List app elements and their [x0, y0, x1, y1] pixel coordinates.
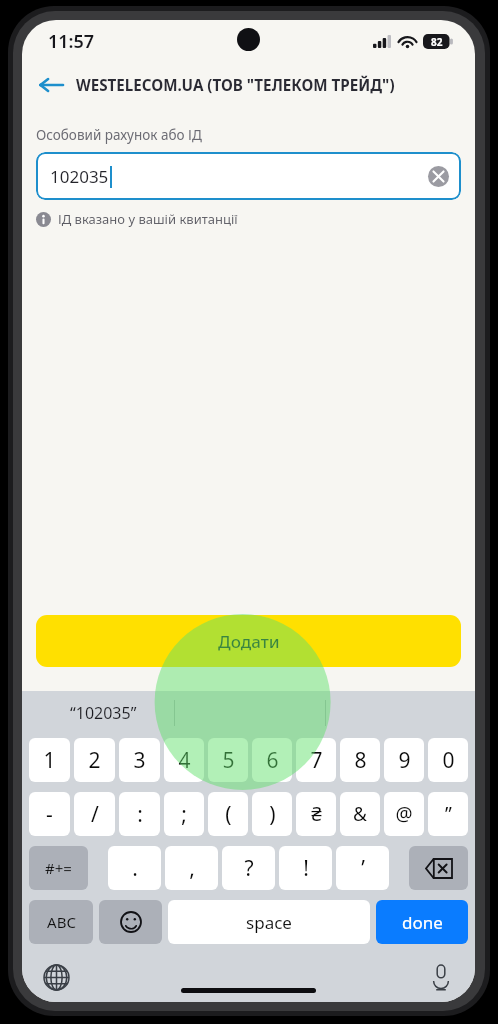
button[interactable]: Backspace — [409, 846, 468, 890]
button[interactable]: ) — [252, 792, 292, 836]
staticText: #+= — [45, 858, 72, 878]
button[interactable]: 7 — [296, 738, 336, 782]
button[interactable]: ; — [164, 792, 204, 836]
staticText: ’ — [361, 854, 365, 883]
button[interactable]: ₴ — [296, 792, 336, 836]
button[interactable]: Change keyboard language — [36, 957, 76, 997]
button[interactable]: / — [74, 792, 115, 836]
staticText: ; — [181, 800, 187, 829]
button[interactable]: 4 — [164, 738, 204, 782]
staticText: 102035 — [50, 165, 109, 188]
staticText: ІД вказано у вашій квитанції — [58, 210, 238, 228]
button[interactable]: 1 — [29, 738, 70, 782]
staticText: @ — [395, 801, 413, 827]
staticText: 9 — [398, 746, 411, 775]
staticText: , — [189, 854, 195, 883]
staticText: 0 — [442, 746, 455, 775]
button[interactable]: @ — [384, 792, 424, 836]
button[interactable]: : — [119, 792, 160, 836]
button[interactable]: ( — [208, 792, 248, 836]
button[interactable]: Додати — [36, 615, 461, 667]
staticText: 3 — [133, 746, 146, 775]
staticText: & — [353, 801, 367, 827]
staticText: 2 — [88, 746, 101, 775]
button[interactable]: 3 — [119, 738, 160, 782]
button[interactable]: space — [168, 900, 370, 944]
staticText: 7 — [310, 746, 323, 775]
button[interactable]: Back — [30, 64, 72, 106]
staticText: . — [132, 854, 138, 883]
staticText: 6 — [266, 746, 279, 775]
staticText: space — [246, 911, 292, 934]
button[interactable]: 102035 — [36, 152, 461, 200]
button[interactable]: , — [165, 846, 218, 890]
button[interactable]: Dictation — [421, 957, 461, 997]
button[interactable]: 5 — [208, 738, 248, 782]
staticText: ) — [269, 800, 276, 829]
staticText: Особовий рахунок або ІД — [36, 126, 202, 144]
button[interactable]: . — [108, 846, 161, 890]
staticText: 11:57 — [48, 29, 95, 54]
button[interactable]: Emoji — [99, 900, 162, 944]
staticText: WESTELECOM.UA (ТОВ "ТЕЛЕКОМ ТРЕЙД") — [76, 75, 395, 96]
staticText: 82 — [431, 35, 443, 49]
button[interactable]: ” — [428, 792, 468, 836]
button[interactable]: 0 — [428, 738, 468, 782]
staticText: ₴ — [311, 801, 322, 827]
button[interactable]: ’ — [336, 846, 389, 890]
button[interactable]: 2 — [74, 738, 115, 782]
staticText: done — [402, 911, 443, 934]
staticText: - — [46, 800, 53, 829]
staticText: Додати — [218, 630, 280, 653]
button[interactable]: Clear — [423, 161, 453, 191]
staticText: 4 — [178, 746, 191, 775]
staticText: ( — [225, 800, 232, 829]
button[interactable]: ABC — [29, 900, 93, 944]
staticText: 8 — [354, 746, 367, 775]
button[interactable]: 6 — [252, 738, 292, 782]
staticText: ? — [244, 854, 254, 883]
button[interactable]: #+= — [29, 846, 88, 890]
staticText: : — [137, 800, 143, 829]
staticText: 5 — [222, 746, 235, 775]
staticText: ” — [445, 801, 452, 827]
button[interactable]: 9 — [384, 738, 424, 782]
button[interactable]: ? — [222, 846, 275, 890]
staticText: “102035” — [70, 702, 137, 724]
button[interactable]: done — [376, 900, 468, 944]
staticText: / — [91, 800, 99, 829]
button[interactable]: & — [340, 792, 380, 836]
button[interactable]: ! — [279, 846, 332, 890]
staticText: ABC — [47, 912, 76, 932]
button[interactable]: - — [29, 792, 70, 836]
staticText: ! — [303, 854, 309, 883]
staticText: 1 — [43, 746, 56, 775]
button[interactable]: 8 — [340, 738, 380, 782]
